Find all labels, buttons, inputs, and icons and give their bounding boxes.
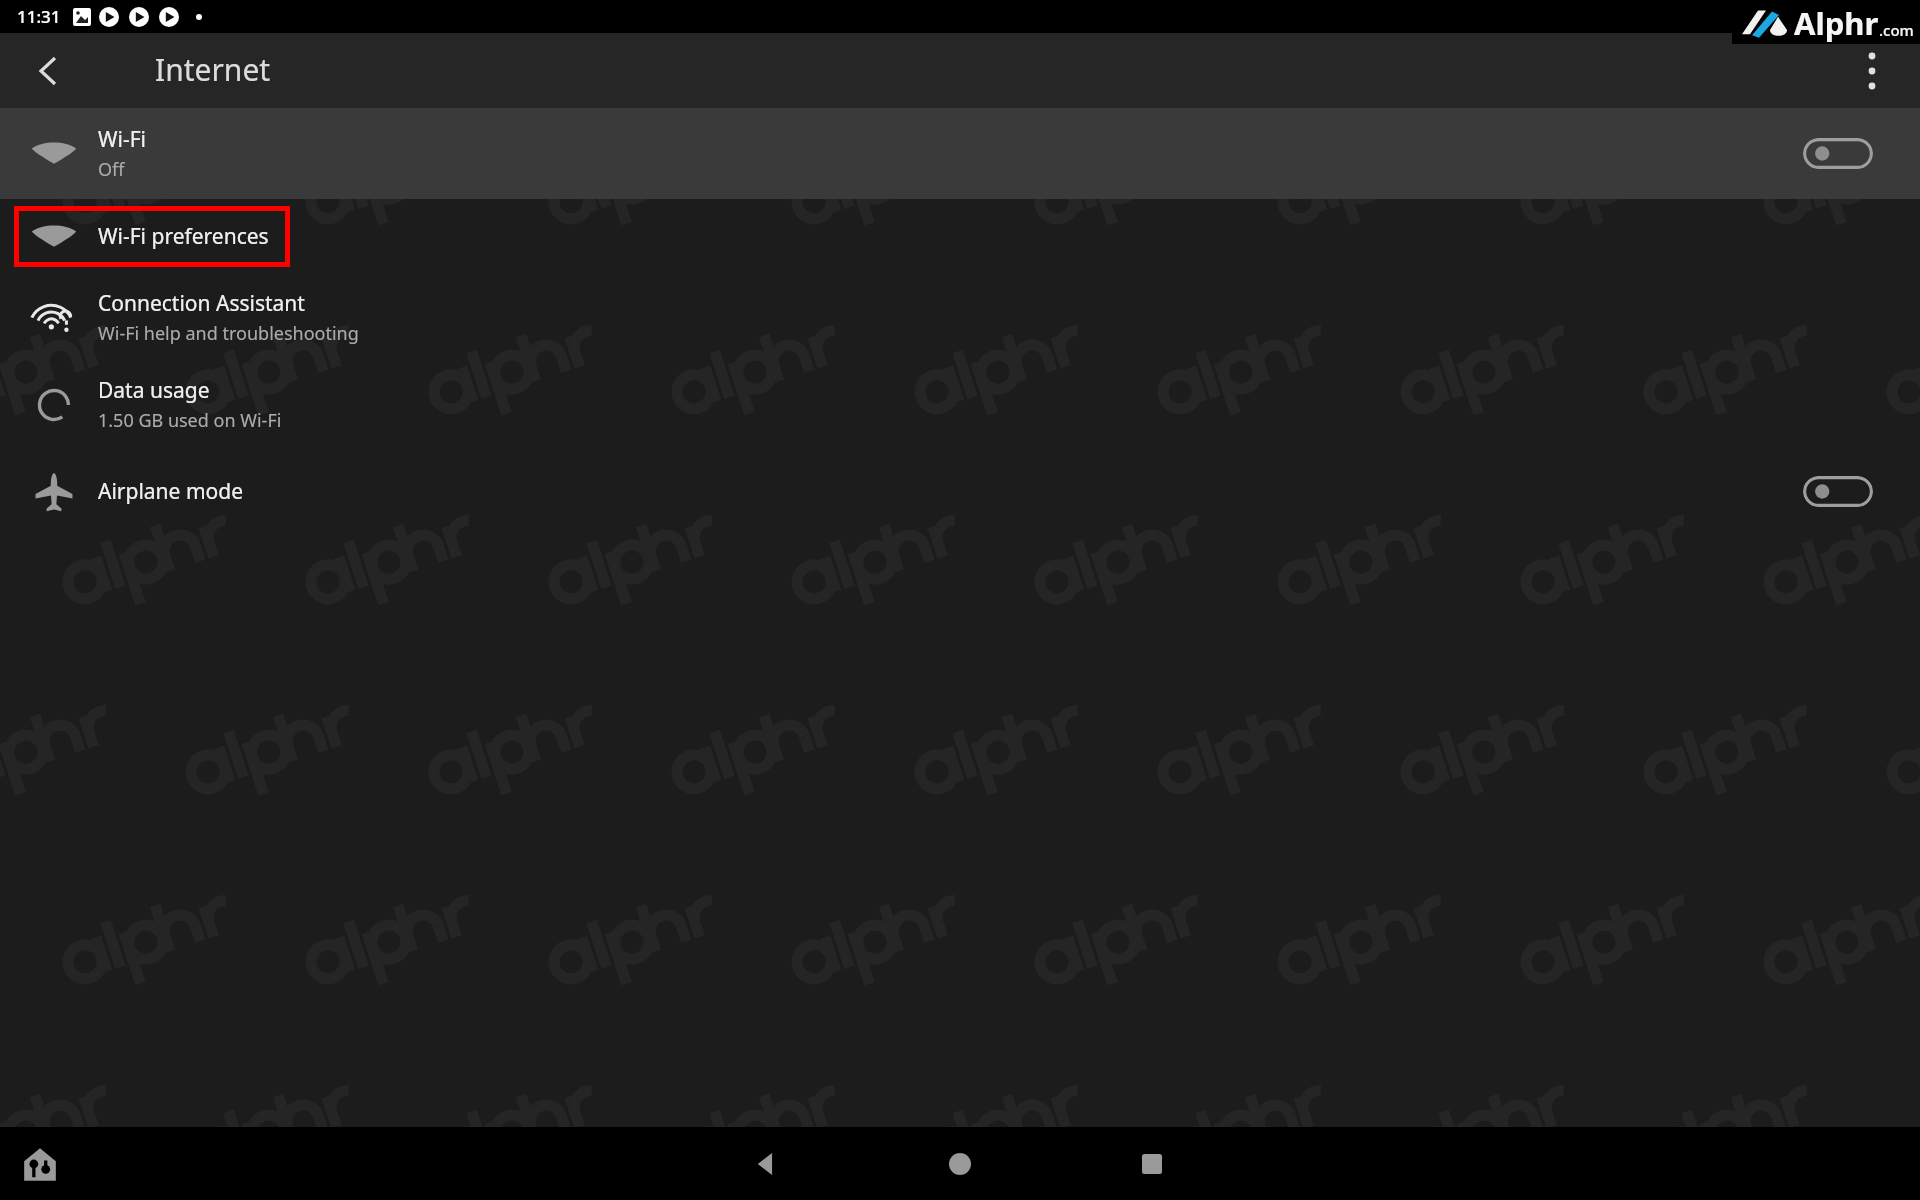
button[interactable]: Recent apps	[1125, 1137, 1179, 1191]
button[interactable]: Connection Assistant	[0, 274, 1920, 361]
button[interactable]: Data usage	[0, 361, 1920, 448]
button[interactable]: Airplane mode	[0, 448, 1920, 534]
staticText: Internet	[155, 49, 271, 90]
staticText: Wi-Fi help and troubleshooting	[98, 321, 359, 346]
staticText: Off	[98, 157, 125, 182]
staticText: Airplane mode	[98, 477, 244, 506]
button[interactable]: Home	[933, 1137, 987, 1191]
staticText: Wi-Fi preferences	[98, 222, 269, 251]
button[interactable]: Wi-Fi	[0, 108, 1920, 199]
staticText: Connection Assistant	[98, 289, 305, 318]
button[interactable]: Home app	[18, 1142, 62, 1186]
staticText: .com	[1879, 20, 1914, 40]
staticText: Alphr	[1794, 2, 1879, 44]
staticText: 1.50 GB used on Wi-Fi	[98, 408, 282, 433]
button[interactable]: Toggle	[1803, 138, 1873, 169]
staticText: Data usage	[98, 376, 210, 405]
button[interactable]: Back	[22, 45, 74, 97]
staticText: Wi-Fi	[98, 125, 147, 154]
staticText: 11:31	[17, 5, 61, 28]
button[interactable]: Back	[739, 1137, 793, 1191]
button[interactable]: More options	[1848, 47, 1896, 95]
button[interactable]	[14, 206, 290, 267]
button[interactable]: Toggle	[1803, 476, 1873, 507]
